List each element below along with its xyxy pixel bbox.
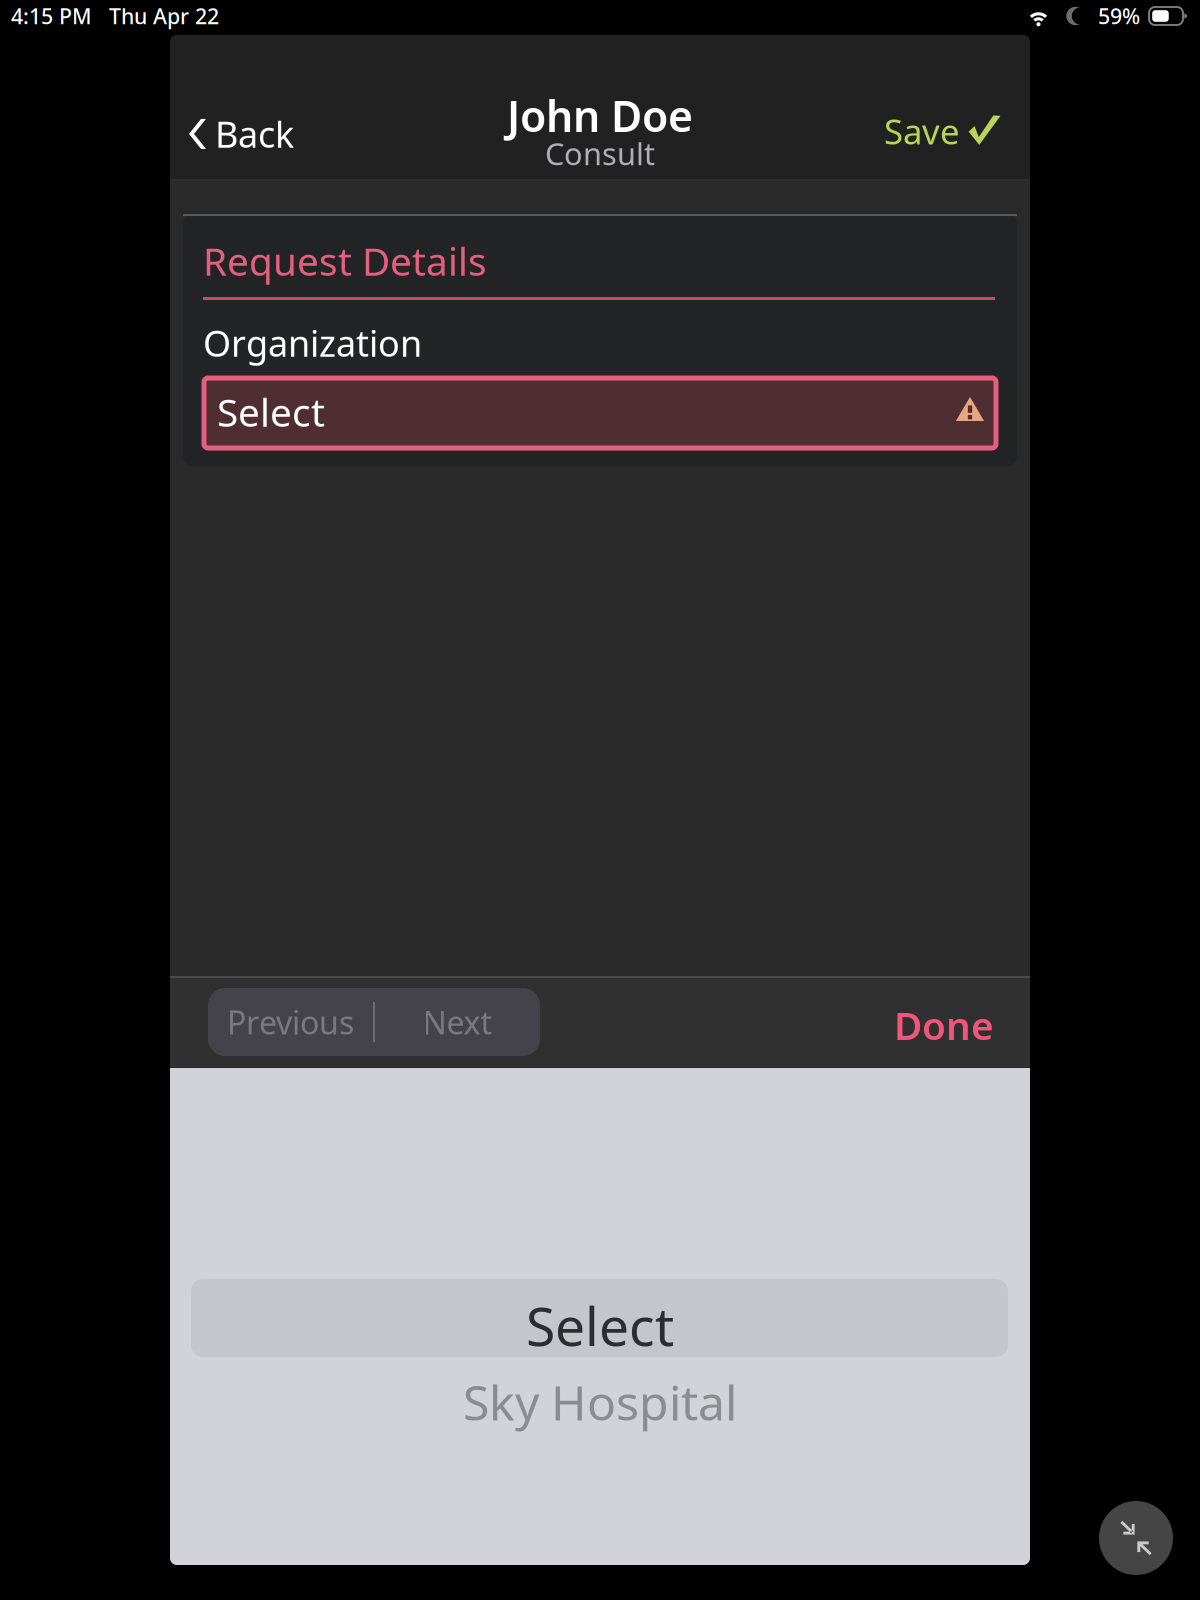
button[interactable]: Next	[375, 988, 540, 1056]
button[interactable]: Save	[870, 98, 1030, 164]
staticText: Select	[526, 1290, 674, 1361]
staticText: 59%	[1098, 2, 1140, 30]
staticText: Save	[884, 108, 960, 154]
button[interactable]: Exit full screen	[1099, 1501, 1173, 1575]
staticText: Organization	[203, 319, 422, 367]
staticText: 4:15 PM	[11, 2, 92, 30]
staticText: Next	[422, 1001, 492, 1043]
staticText: Thu Apr 22	[109, 2, 219, 30]
staticText: Select	[217, 386, 325, 437]
staticText: Previous	[227, 1001, 354, 1043]
button[interactable]: Previous	[208, 988, 373, 1056]
button[interactable]: Select	[204, 378, 996, 448]
staticText: Consult	[545, 133, 655, 174]
button[interactable]: Done	[870, 991, 1030, 1059]
staticText: Done	[894, 999, 994, 1051]
staticText: John Doe	[507, 87, 693, 144]
button[interactable]: Back	[170, 100, 310, 168]
staticText: Sky Hospital	[463, 1370, 737, 1434]
staticText: Back	[215, 110, 294, 158]
staticText: Request Details	[203, 235, 487, 286]
